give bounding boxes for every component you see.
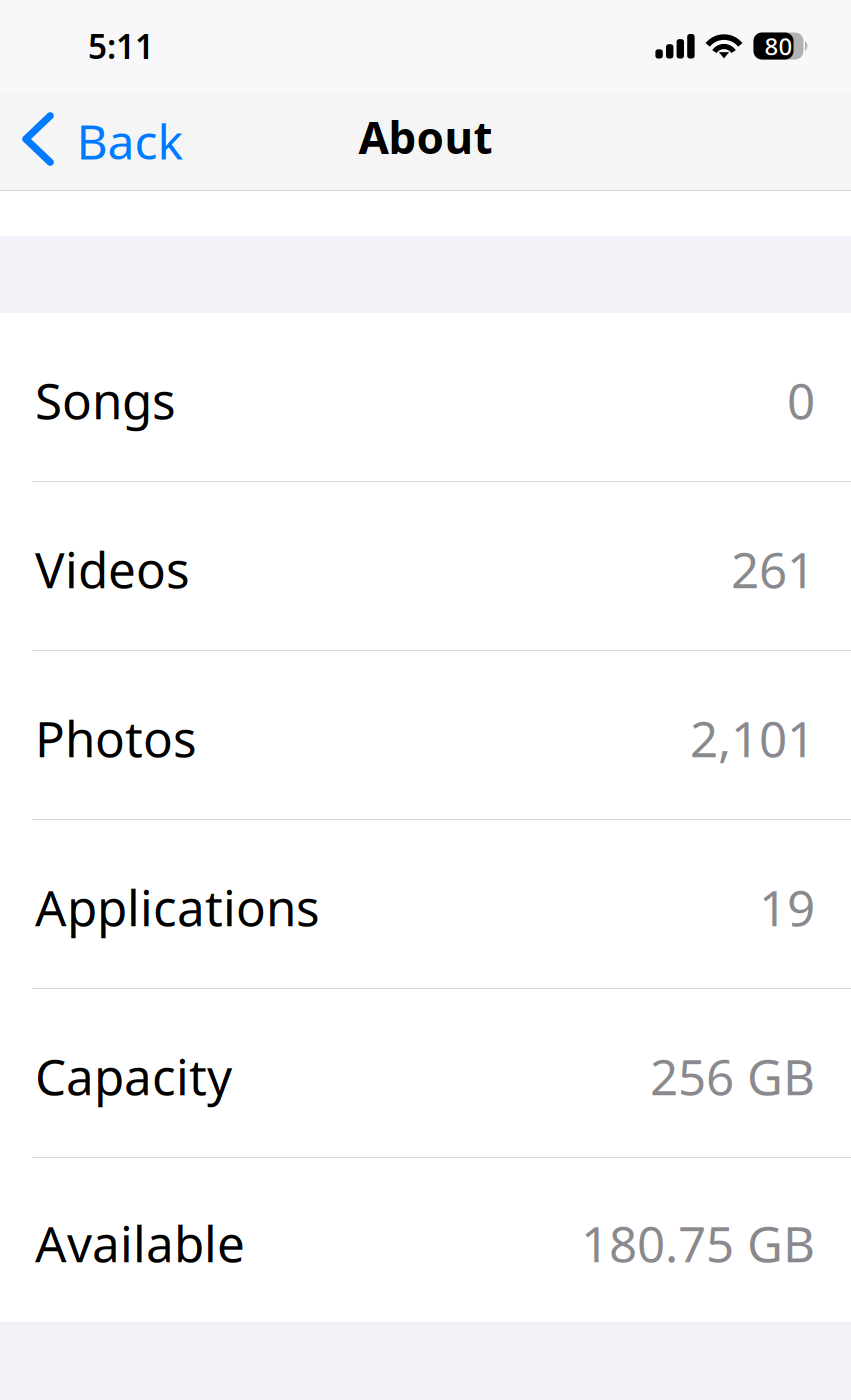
staticText: Back	[76, 109, 183, 173]
staticText: 0	[787, 367, 815, 433]
staticText: 180.75 GB	[581, 1210, 815, 1276]
staticText: Songs	[35, 367, 176, 433]
staticText: 256 GB	[650, 1043, 815, 1109]
button[interactable]: Photos	[0, 651, 851, 820]
staticText: Videos	[35, 536, 190, 602]
button[interactable]: Available	[0, 1158, 851, 1322]
staticText: 261	[731, 536, 815, 602]
button[interactable]: Capacity	[0, 989, 851, 1158]
staticText: 80	[764, 30, 792, 62]
button[interactable]: Songs	[0, 313, 851, 482]
staticText: 19	[759, 874, 815, 940]
staticText: 5:11	[88, 24, 154, 68]
button[interactable]: Applications	[0, 820, 851, 989]
staticText: 2,101	[690, 705, 815, 771]
staticText: Available	[35, 1210, 245, 1276]
staticText: Capacity	[35, 1043, 232, 1109]
staticText: Applications	[35, 874, 320, 940]
staticText: About	[358, 108, 492, 166]
button[interactable]: Videos	[0, 482, 851, 651]
staticText: Photos	[35, 705, 197, 771]
button[interactable]: Back	[0, 92, 220, 190]
